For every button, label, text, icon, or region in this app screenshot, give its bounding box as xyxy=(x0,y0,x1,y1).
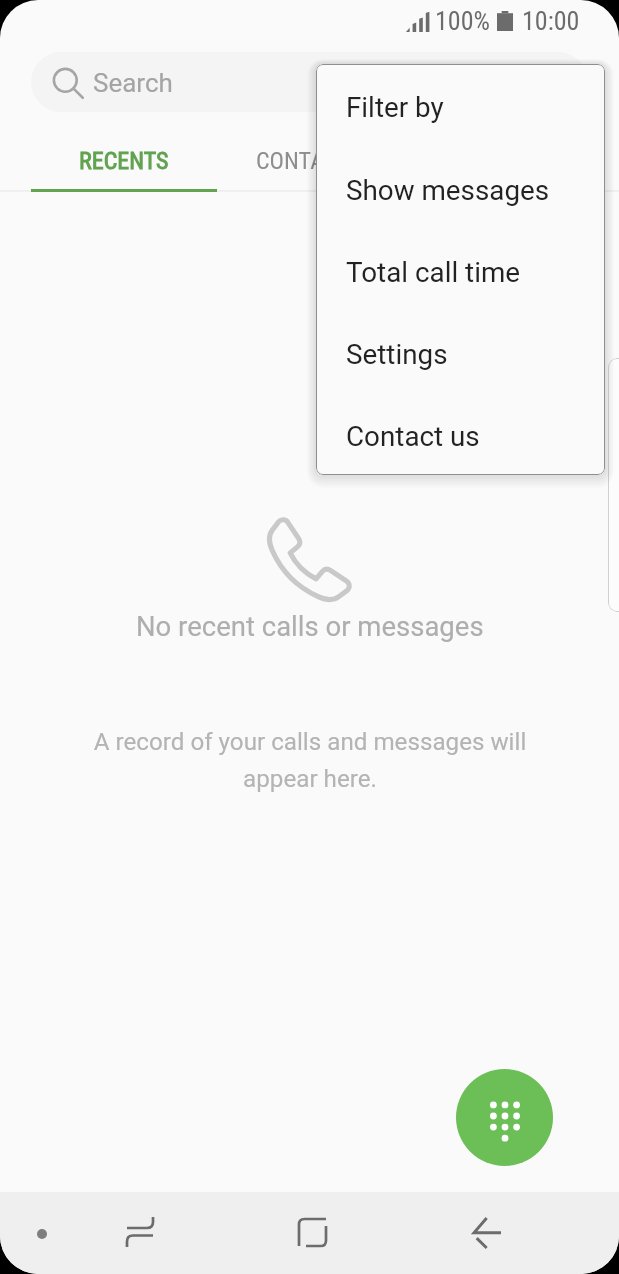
button[interactable]: PLACES xyxy=(402,121,588,201)
staticText: Contact us xyxy=(346,420,480,453)
staticText: 10:00 xyxy=(522,6,580,36)
button[interactable]: Settings xyxy=(316,311,605,393)
button[interactable]: RECENTS xyxy=(31,121,216,201)
staticText: RECENTS xyxy=(79,147,169,175)
staticText: CONTACTS xyxy=(256,147,362,175)
button[interactable]: Search xyxy=(31,52,588,112)
button[interactable]: Show messages xyxy=(316,147,605,229)
staticText: Total call time xyxy=(346,256,521,289)
staticText: Search xyxy=(93,68,173,98)
staticText: 100% xyxy=(435,6,490,36)
staticText: No recent calls or messages xyxy=(136,610,484,642)
button[interactable]: Home xyxy=(278,1199,348,1267)
button[interactable]: Open dialpad xyxy=(456,1069,553,1166)
staticText: Filter by xyxy=(346,91,444,124)
button[interactable]: Total call time xyxy=(316,229,605,311)
staticText: A record of your calls and messages will… xyxy=(68,728,552,792)
button[interactable]: Contact us xyxy=(316,393,605,475)
staticText: Show messages xyxy=(346,174,550,207)
button[interactable]: Filter by xyxy=(316,64,605,147)
button[interactable]: Back xyxy=(452,1198,522,1268)
staticText: Settings xyxy=(346,338,448,371)
button[interactable]: CONTACTS xyxy=(216,121,402,201)
button[interactable]: Recent apps xyxy=(105,1197,175,1267)
